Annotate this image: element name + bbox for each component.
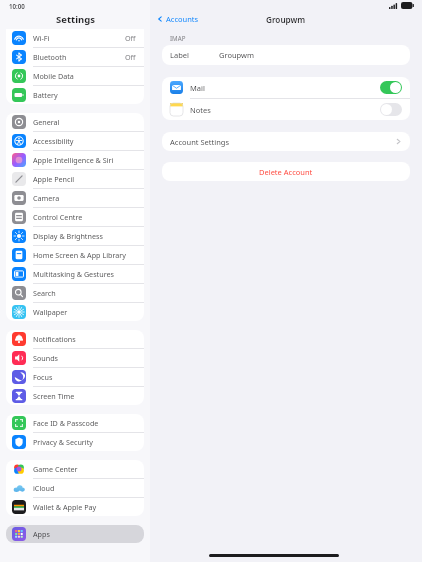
staticText: Mobile Data (33, 71, 136, 81)
button[interactable]: Bluetooth (6, 48, 144, 67)
staticText: Wallpaper (33, 307, 136, 317)
button[interactable]: Sounds (6, 349, 144, 368)
button[interactable]: Mail (162, 77, 410, 98)
button[interactable]: Apple Pencil (6, 170, 144, 189)
button[interactable]: Apple Intelligence & Siri (6, 151, 144, 170)
button[interactable]: Notes (162, 99, 410, 120)
button[interactable]: Battery (6, 86, 144, 104)
button[interactable]: Display & Brightness (6, 227, 144, 246)
staticText: Apple Intelligence & Siri (33, 155, 136, 165)
button[interactable]: Mobile Data (6, 67, 144, 86)
button[interactable]: Delete Account (162, 162, 410, 181)
staticText: Privacy & Security (33, 437, 136, 447)
button[interactable]: Notifications (6, 330, 144, 349)
staticText: Account Settings (170, 137, 395, 147)
staticText: Settings (56, 13, 95, 26)
button[interactable]: Wallet & Apple Pay (6, 498, 144, 516)
staticText: Notes (190, 105, 380, 115)
button[interactable]: General (6, 113, 144, 132)
staticText: Apple Pencil (33, 174, 136, 184)
button[interactable]: iCloud (6, 479, 144, 498)
button[interactable]: Screen Time (6, 387, 144, 405)
staticText: Face ID & Passcode (33, 418, 136, 428)
button[interactable]: Control Centre (6, 208, 144, 227)
staticText: Bluetooth (33, 52, 125, 62)
button[interactable]: Search (6, 284, 144, 303)
staticText: Display & Brightness (33, 231, 136, 241)
button[interactable]: Apps (6, 525, 144, 543)
button[interactable]: Focus (6, 368, 144, 387)
button[interactable]: Face ID & Passcode (6, 414, 144, 433)
button[interactable]: Accounts (157, 14, 199, 24)
button[interactable]: Wi-Fi (6, 29, 144, 48)
staticText: Search (33, 288, 136, 298)
staticText: Mail (190, 83, 380, 93)
button[interactable]: Wallpaper (6, 303, 144, 321)
staticText: Apps (33, 529, 50, 539)
staticText: iCloud (33, 483, 136, 493)
staticText: Camera (33, 193, 136, 203)
staticText: Sounds (33, 353, 136, 363)
staticText: General (33, 117, 136, 127)
button[interactable]: Label (162, 45, 410, 65)
staticText: Label (170, 50, 189, 60)
staticText: Off (125, 33, 136, 43)
staticText: Off (125, 52, 136, 62)
staticText: Screen Time (33, 391, 136, 401)
button[interactable]: Multitasking & Gestures (6, 265, 144, 284)
button[interactable]: Home Screen & App Library (6, 246, 144, 265)
staticText: Groupwm (219, 50, 254, 60)
staticText: Accounts (166, 14, 199, 24)
staticText: Wi-Fi (33, 33, 125, 43)
staticText: Multitasking & Gestures (33, 269, 136, 279)
button[interactable]: Game Center (6, 460, 144, 479)
button[interactable]: Accessibility (6, 132, 144, 151)
button[interactable]: Toggle on (380, 81, 402, 94)
staticText: Focus (33, 372, 136, 382)
staticText: Accessibility (33, 136, 136, 146)
staticText: Game Center (33, 464, 136, 474)
button[interactable]: Account Settings (162, 132, 410, 151)
staticText: 10:00 (9, 2, 25, 10)
staticText: Home Screen & App Library (33, 250, 136, 260)
button[interactable]: Toggle off (380, 103, 402, 116)
staticText: Notifications (33, 334, 136, 344)
button[interactable]: Privacy & Security (6, 433, 144, 451)
staticText: Control Centre (33, 212, 136, 222)
staticText: Wallet & Apple Pay (33, 502, 136, 512)
staticText: IMAP (170, 34, 186, 42)
staticText: Delete Account (259, 167, 313, 177)
staticText: Groupwm (266, 14, 306, 25)
staticText: Battery (33, 90, 136, 100)
button[interactable]: Camera (6, 189, 144, 208)
